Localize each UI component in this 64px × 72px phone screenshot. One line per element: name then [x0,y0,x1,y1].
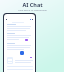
staticText: Chat Bot & AI Commands [18,8,47,11]
button[interactable] [8,58,12,63]
button[interactable]: Logo [20,51,24,55]
staticText: AI Chat [22,1,43,8]
